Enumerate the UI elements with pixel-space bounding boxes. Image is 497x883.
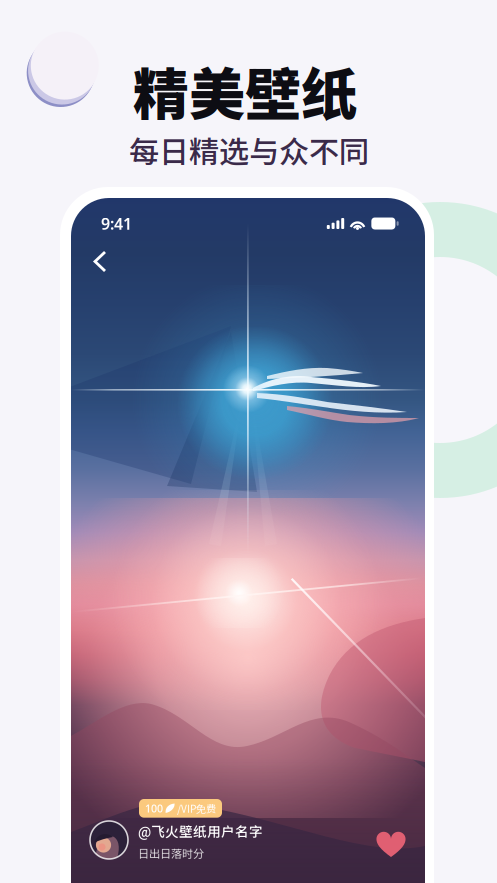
staticText: 每日精选与众不同	[129, 128, 369, 172]
staticText: 精美壁纸	[133, 50, 357, 131]
staticText: 9:41	[101, 213, 132, 234]
staticText: /VIP免费	[177, 801, 216, 816]
staticText: 100	[145, 801, 163, 815]
button[interactable]: Back	[71, 240, 131, 283]
staticText: @飞火壁纸用户名字	[138, 821, 263, 841]
button[interactable]: Favorite	[368, 822, 414, 866]
staticText: 日出日落时分	[138, 845, 204, 861]
